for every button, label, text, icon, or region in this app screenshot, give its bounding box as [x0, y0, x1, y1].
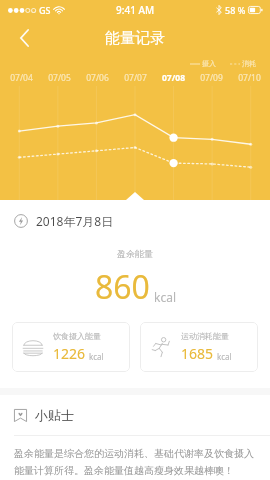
staticText: 盈余能量是综合您的运动消耗、基础代谢率及饮食摄入能量计算所得。盈余能量值越高瘦身… — [14, 447, 256, 477]
staticText: 1685 — [181, 344, 214, 363]
button[interactable]: 07/05 — [40, 70, 78, 86]
staticText: 07/06 — [86, 72, 109, 84]
staticText: 1226 — [53, 344, 86, 363]
staticText: GS — [39, 4, 51, 16]
button[interactable]: 07/07 — [116, 70, 154, 86]
staticText: 860 — [95, 265, 150, 309]
button[interactable]: 运动消耗能量 — [140, 322, 258, 372]
staticText: 消耗 — [242, 59, 256, 68]
staticText: 能量记录 — [105, 29, 165, 48]
staticText: 07/10 — [238, 72, 261, 84]
staticText: kcal — [217, 351, 232, 362]
staticText: 58 % — [225, 4, 246, 16]
staticText: 小贴士 — [35, 407, 74, 423]
staticText: 07/08 — [162, 72, 185, 84]
staticText: 盈余能量 — [117, 248, 153, 259]
button[interactable]: 07/04 — [2, 70, 40, 86]
button[interactable]: 饮食摄入能量 — [12, 322, 130, 372]
button[interactable]: 07/08 — [154, 70, 192, 86]
button[interactable]: 07/06 — [78, 70, 116, 86]
staticText: kcal — [154, 289, 176, 305]
staticText: 运动消耗能量 — [181, 331, 229, 341]
staticText: 饮食摄入能量 — [53, 331, 101, 341]
staticText: 2018年7月8日 — [36, 213, 114, 229]
staticText: 07/07 — [124, 72, 147, 84]
button[interactable]: 07/09 — [192, 70, 230, 86]
staticText: 07/05 — [48, 72, 71, 84]
button[interactable]: Back — [8, 22, 40, 54]
staticText: 07/09 — [200, 72, 223, 84]
staticText: 9:41 AM — [116, 3, 155, 17]
staticText: kcal — [89, 351, 104, 362]
button[interactable]: 07/10 — [230, 70, 268, 86]
button[interactable]: 摄入 — [190, 59, 216, 68]
staticText: 摄入 — [202, 59, 216, 68]
staticText: 07/04 — [10, 72, 33, 84]
button[interactable]: 消耗 — [230, 59, 256, 68]
